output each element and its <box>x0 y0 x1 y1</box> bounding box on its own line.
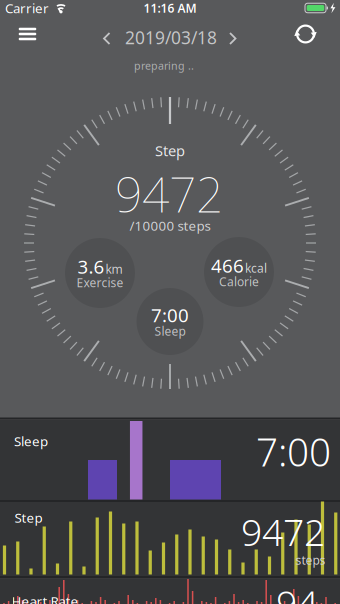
button[interactable]: Sleep <box>0 419 340 500</box>
button[interactable]: Step <box>0 502 340 576</box>
staticText: Step <box>14 509 42 526</box>
staticText: 7:00 <box>151 303 189 327</box>
staticText: 7:00 <box>256 426 331 477</box>
staticText: 94 <box>276 578 318 604</box>
staticText: preparing .. <box>134 58 194 73</box>
staticText: 2019/03/18 <box>125 26 217 49</box>
staticText: Exercise <box>76 274 123 290</box>
staticText: 9472 <box>241 507 325 556</box>
button[interactable] <box>101 31 113 46</box>
staticText: 466 <box>211 253 244 278</box>
staticText: km <box>105 261 122 277</box>
staticText: steps <box>295 552 325 568</box>
button[interactable]: Heart Rate <box>0 578 340 604</box>
staticText: Carrier <box>5 0 49 17</box>
staticText: /10000 steps <box>129 217 210 234</box>
staticText: Sleep <box>154 323 185 339</box>
staticText: 3.6 <box>77 254 104 279</box>
staticText: Sleep <box>14 432 48 450</box>
staticText: kcal <box>245 260 267 276</box>
button[interactable] <box>13 25 41 43</box>
staticText: 11:16 AM <box>143 0 196 16</box>
staticText: Calorie <box>219 273 259 289</box>
staticText: 9472 <box>115 162 223 226</box>
staticText: Heart Rate <box>11 592 78 604</box>
button[interactable] <box>292 21 318 47</box>
button[interactable] <box>226 31 238 46</box>
staticText: Step <box>155 141 185 160</box>
